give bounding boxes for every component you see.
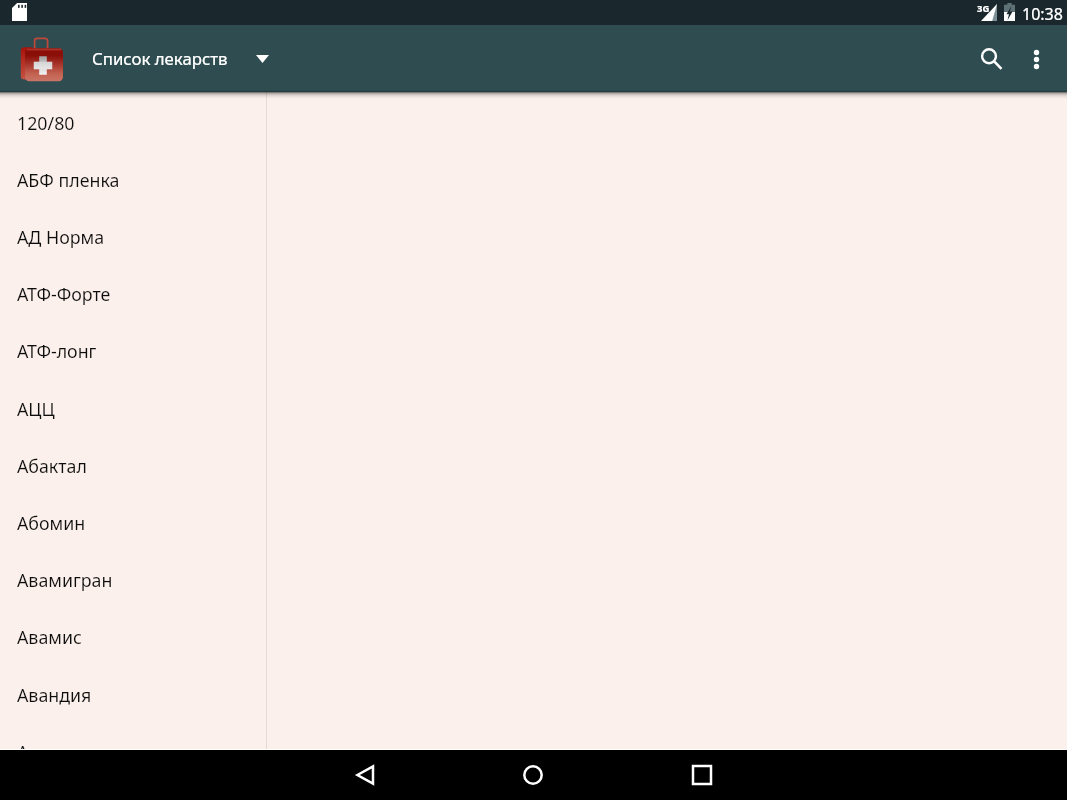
staticText: 120/80 (17, 111, 75, 135)
button[interactable]: АБФ пленка (0, 151, 266, 208)
other: App icon (19, 35, 63, 85)
staticText: Список лекарств (92, 47, 228, 70)
staticText: Абомин (17, 511, 86, 535)
staticText: Авандия (17, 683, 92, 707)
staticText: 3G (977, 2, 990, 15)
staticText: АТФ-лонг (17, 339, 97, 363)
button[interactable]: Авамигран (0, 551, 266, 608)
button[interactable]: АЦЦ (0, 380, 266, 437)
button[interactable]: АТФ-Форте (0, 265, 266, 322)
button[interactable]: Абомин (0, 494, 266, 551)
button[interactable]: Авамис (0, 608, 266, 665)
button[interactable]: App icon (0, 25, 277, 92)
staticText: Авелокс (17, 740, 88, 750)
button[interactable]: Авелокс (0, 723, 266, 750)
staticText: Авамис (17, 625, 82, 649)
staticText: Абактал (17, 454, 87, 478)
button[interactable]: Абактал (0, 437, 266, 494)
staticText: 10:38 (1022, 3, 1063, 25)
button[interactable]: Авандия (0, 666, 266, 723)
button[interactable]: АТФ-лонг (0, 322, 266, 379)
button[interactable]: 120/80 (0, 94, 266, 151)
staticText: Авамигран (17, 568, 113, 592)
button[interactable]: Home (502, 750, 564, 800)
staticText: АД Норма (17, 225, 105, 249)
staticText: АБФ пленка (17, 168, 120, 192)
button[interactable]: Recents (671, 750, 733, 800)
staticText: АЦЦ (17, 397, 55, 421)
button[interactable]: Back (334, 750, 396, 800)
button[interactable]: АД Норма (0, 208, 266, 265)
staticText: АТФ-Форте (17, 282, 111, 306)
button[interactable]: Search (964, 35, 1012, 83)
button[interactable]: More options (1012, 35, 1060, 83)
